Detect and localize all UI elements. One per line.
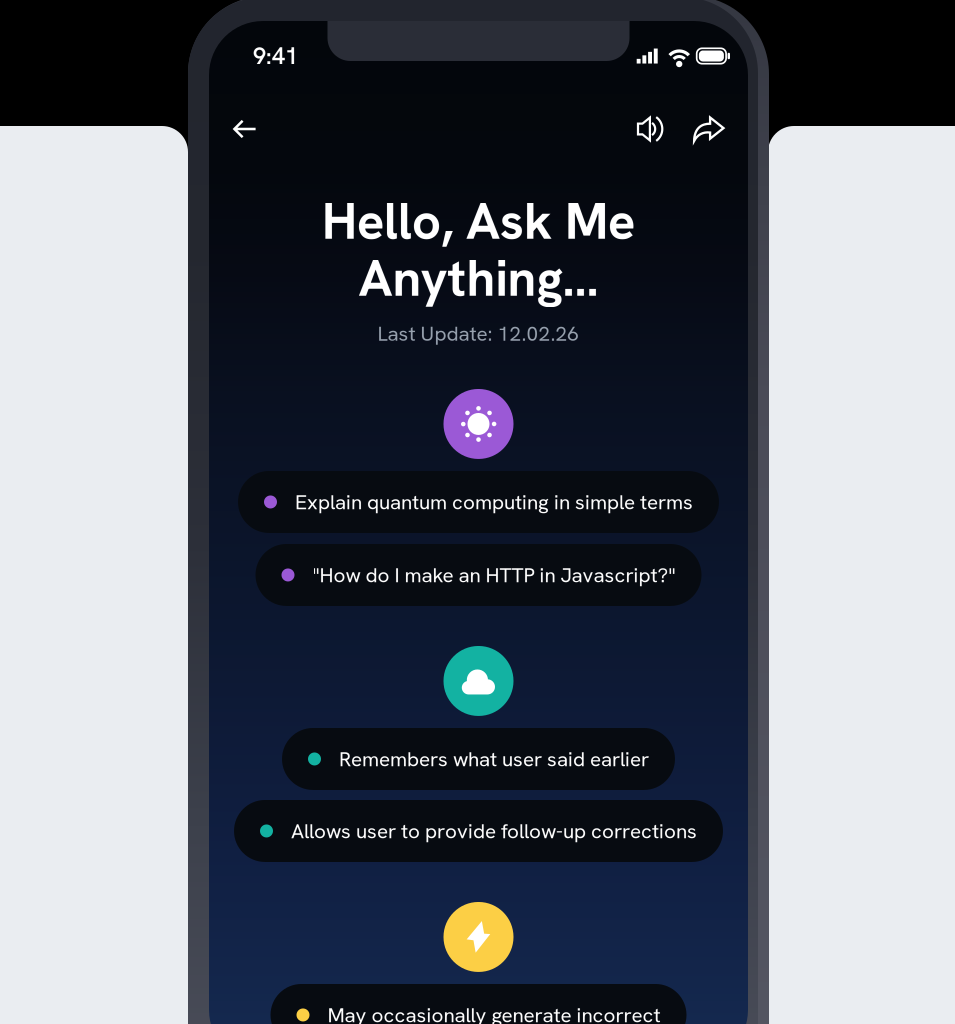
staticText: "How do I make an HTTP in Javascript?" (312, 561, 675, 588)
button[interactable]: Back (221, 106, 269, 152)
staticText: 9:41 (253, 41, 298, 71)
button[interactable]: Allows user to provide follow-up correct… (234, 800, 723, 862)
button[interactable]: Read aloud (628, 106, 674, 152)
staticText: Allows user to provide follow-up correct… (291, 817, 697, 844)
staticText: Hello, Ask Me (322, 188, 635, 254)
staticText: May occasionally generate incorrect (327, 1001, 660, 1024)
button[interactable]: "How do I make an HTTP in Javascript?" (255, 544, 701, 606)
staticText: Remembers what user said earlier (339, 745, 649, 772)
staticText: Last Update: 12.02.26 (377, 320, 579, 347)
button[interactable]: Remembers what user said earlier (282, 728, 675, 790)
button[interactable]: May occasionally generate incorrect (270, 984, 686, 1024)
staticText: Explain quantum computing in simple term… (295, 488, 693, 515)
button[interactable]: Explain quantum computing in simple term… (238, 471, 719, 533)
staticText: Anything... (358, 245, 598, 311)
button[interactable]: Share (686, 106, 732, 152)
